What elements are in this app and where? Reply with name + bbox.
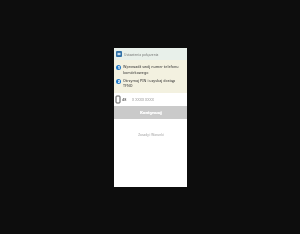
staticText: X XXXX XXXX [132, 97, 154, 102]
other: App icon [116, 51, 122, 57]
staticText: 2 [118, 80, 120, 84]
staticText: Kontynuuj [140, 110, 162, 116]
button[interactable]: Phone number [114, 93, 187, 106]
staticText: 48 [122, 97, 127, 102]
staticText: komórkowego [123, 70, 149, 75]
staticText: Wprowadź swój numer telefonu [123, 64, 179, 69]
staticText: Otrzymaj PIN i uzyskaj dostęp TFNO [123, 78, 185, 88]
staticText: 1 [118, 66, 120, 70]
button[interactable]: App icon [114, 48, 187, 60]
button[interactable]: Kontynuuj [114, 106, 187, 119]
other: Phone number [116, 96, 120, 103]
staticText: Zasady i Warunki [138, 133, 164, 137]
staticText: Ustawienia połączenia [124, 52, 159, 56]
